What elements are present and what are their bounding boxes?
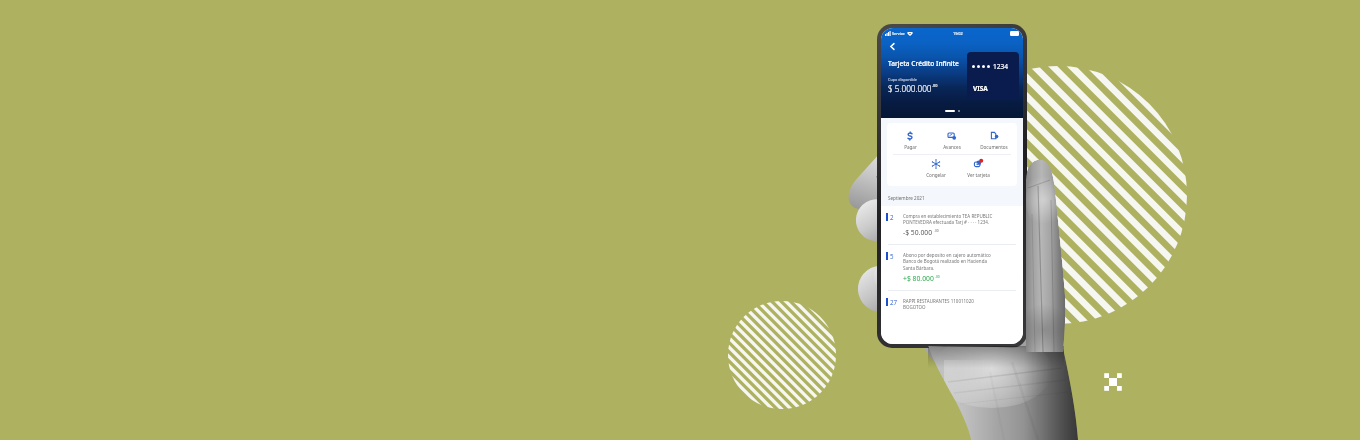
staticText: Ver tarjeta [967,172,990,178]
staticText: Avances [943,144,961,150]
button[interactable]: Documentos [973,127,1015,154]
staticText: Tarjeta Crédito Infinite [888,59,959,68]
staticText: +$ 80.000 [903,274,934,283]
staticText: Pagar [904,144,917,150]
staticText: 5 [890,252,900,260]
button[interactable]: 5 [881,245,1023,290]
button[interactable]: 2 [881,206,1023,244]
staticText: VISA [973,84,988,93]
staticText: $ 5.000.000 [888,83,932,94]
staticText: Septiembre 2021 [888,195,925,201]
staticText: 19:02 [953,31,963,36]
button[interactable]: Back [888,42,897,51]
staticText: Compra en establecimiento TEA REPUBLIC P… [903,213,993,225]
button[interactable]: 27 [881,291,1023,317]
staticText: .00 [934,228,939,233]
staticText: .00 [932,83,938,88]
button[interactable]: Congelar [915,155,957,182]
staticText: 27 [890,298,900,306]
button[interactable]: Avances [931,127,973,154]
staticText: 1234 [993,62,1009,71]
staticText: Abono por deposito en cajero automático … [903,252,991,271]
staticText: Congelar [926,172,946,178]
staticText: -$ 50.000 [903,228,933,237]
button[interactable]: Pagar [889,127,931,154]
staticText: 2 [890,213,900,221]
staticText: Cupo disponible [888,77,917,82]
staticText: Documentos [980,144,1008,150]
staticText: Service [892,31,905,36]
staticText: .00 [935,274,940,279]
staticText: RAPPI RESTAURANTES 110011020 BOGOTOO [903,298,974,310]
button[interactable]: Ver tarjeta [957,155,999,182]
